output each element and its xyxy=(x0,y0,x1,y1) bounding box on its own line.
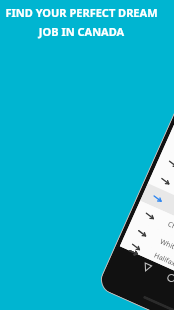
button[interactable]: Winnipeg xyxy=(156,149,174,209)
button[interactable]: Whitehorse xyxy=(125,218,174,278)
button[interactable]: Halifax xyxy=(120,235,174,289)
button[interactable]: Regina xyxy=(140,183,174,243)
staticText: FIND YOUR PERFECT DREAM JOB IN CANADA xyxy=(5,5,158,39)
button[interactable]: Edmonton xyxy=(148,166,174,226)
staticText: Halifax xyxy=(152,250,174,269)
staticText: Whitehorse xyxy=(158,237,174,261)
button[interactable]: Vancouver xyxy=(171,114,174,174)
staticText: Charlottetown xyxy=(166,219,174,248)
button[interactable]: Home xyxy=(161,267,174,289)
button[interactable]: Montreal xyxy=(163,131,174,191)
button[interactable]: Charlottetown xyxy=(132,201,174,261)
button[interactable]: Back xyxy=(136,256,157,278)
